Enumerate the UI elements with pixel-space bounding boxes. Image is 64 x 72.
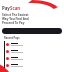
button[interactable]: Scan and Pay xyxy=(2,28,62,34)
button[interactable] xyxy=(0,62,64,69)
button[interactable] xyxy=(0,55,64,62)
button[interactable] xyxy=(0,48,64,55)
staticText: Select The Easiest Way You Find And Proc… xyxy=(2,13,29,25)
staticText: Pay xyxy=(2,5,10,11)
staticText: Recent Pays xyxy=(4,36,20,40)
button[interactable] xyxy=(0,41,64,48)
staticText: Scan xyxy=(10,5,21,11)
